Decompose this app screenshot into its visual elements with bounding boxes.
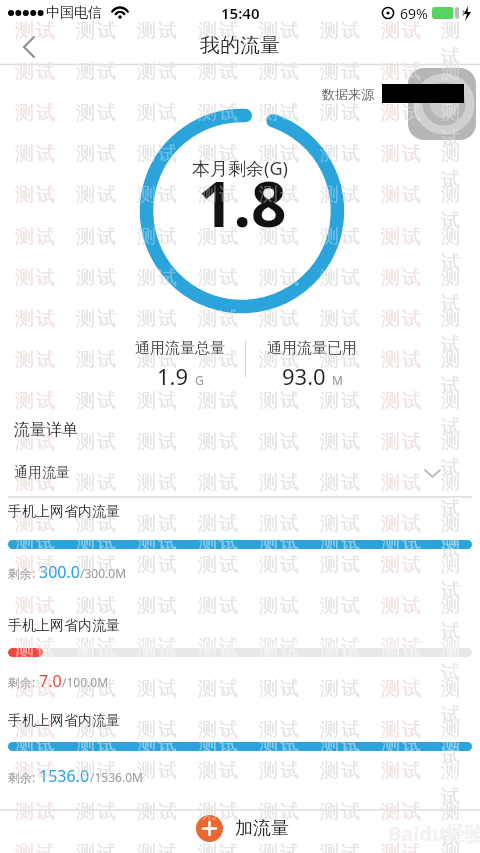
staticText: 手机上网省内流量: [8, 503, 120, 521]
staticText: 15:40: [221, 3, 260, 23]
staticText: 剩余:: [8, 769, 36, 785]
staticText: 69%: [400, 4, 428, 23]
button[interactable]: 我的流量: [0, 33, 480, 63]
staticText: 手机上网省内流量: [8, 712, 120, 730]
staticText: 通用流量总量: [135, 339, 225, 358]
staticText: 1536.0: [39, 765, 90, 787]
staticText: 93.0: [282, 361, 326, 391]
staticText: 手机上网省内流量: [8, 617, 120, 635]
staticText: 数据来源: [322, 86, 374, 102]
button[interactable]: 加流量: [196, 813, 289, 843]
staticText: M: [332, 372, 343, 388]
staticText: 通用流量: [14, 464, 70, 482]
staticText: 7.0: [39, 670, 62, 692]
staticText: 流量详单: [14, 420, 78, 440]
staticText: 剩余:: [8, 565, 36, 581]
staticText: 剩余:: [8, 674, 36, 690]
staticText: /1536.0M: [90, 769, 143, 785]
staticText: 我的流量: [200, 33, 280, 58]
staticText: /100.0M: [62, 674, 109, 690]
staticText: 通用流量已用: [267, 339, 357, 358]
staticText: /300.0M: [80, 565, 127, 581]
staticText: G: [195, 372, 204, 388]
staticText: 1.9: [157, 361, 189, 391]
staticText: 300.0: [39, 561, 80, 583]
staticText: 1.8: [198, 161, 287, 245]
staticText: 中国电信: [46, 4, 102, 22]
staticText: 加流量: [235, 817, 289, 840]
staticText: Baidu经验: [388, 820, 480, 847]
staticText: 本月剩余(G): [192, 156, 288, 181]
button[interactable]: 通用流量: [0, 458, 480, 494]
